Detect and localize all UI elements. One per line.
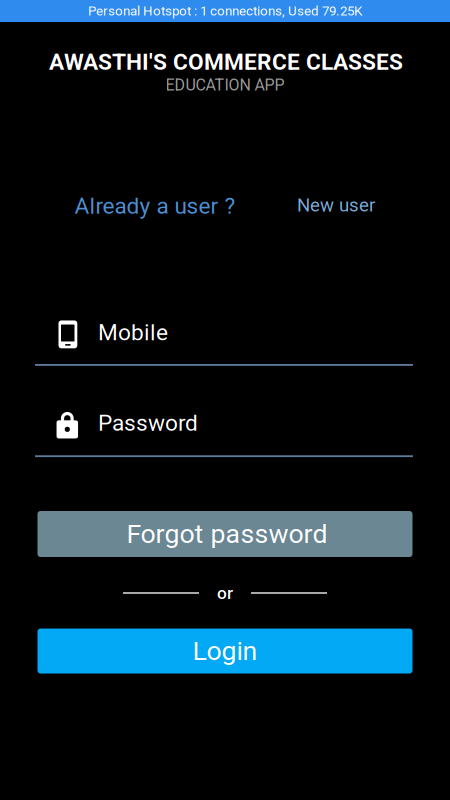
staticText: EDUCATION APP bbox=[165, 76, 284, 94]
button[interactable]: Mobile bbox=[35, 309, 413, 366]
staticText: or bbox=[217, 583, 233, 603]
staticText: Forgot password bbox=[126, 518, 327, 550]
button[interactable]: Password bbox=[35, 399, 413, 457]
staticText: AWASTHI'S COMMERCE CLASSES bbox=[49, 49, 403, 75]
button[interactable]: Forgot password bbox=[37, 511, 412, 557]
button[interactable]: Login bbox=[37, 628, 412, 673]
staticText: Login bbox=[192, 635, 257, 667]
staticText: New user bbox=[297, 194, 375, 216]
staticText: Mobile bbox=[98, 319, 168, 346]
staticText: Password bbox=[98, 410, 198, 436]
button[interactable]: Already a user ? bbox=[55, 189, 255, 223]
staticText: Personal Hotspot : 1 connections, Used 7… bbox=[88, 3, 362, 19]
staticText: Already a user ? bbox=[74, 193, 235, 219]
button[interactable]: New user bbox=[281, 190, 391, 220]
